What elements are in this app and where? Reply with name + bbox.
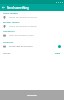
button[interactable]: Where do you want to deliver (0, 23, 64, 29)
button[interactable]: Do we need an insurance (0, 43, 64, 49)
staticText: Do we need an insurance (9, 45, 33, 48)
staticText: What do you want to send (9, 34, 34, 37)
staticText: PICKUP ADDRESS (3, 12, 18, 14)
staticText: DELIVERY ADDRESS (3, 21, 20, 23)
staticText: INSURANCE (3, 41, 14, 43)
button[interactable]: Where do you want to pick up (0, 14, 64, 20)
button[interactable]: What do you want to send (0, 32, 64, 38)
staticText: ITEM DETAILS (3, 30, 15, 32)
staticText: FREE (55, 52, 60, 55)
staticText: Send something (7, 6, 29, 10)
button[interactable]: PROCEED (0, 90, 64, 100)
staticText: Delivery (3, 52, 11, 55)
staticText: PROCEED (27, 94, 37, 97)
staticText: Where do you want to deliver (9, 25, 37, 28)
button[interactable]: Back (1, 5, 6, 10)
staticText: Where do you want to pick up (9, 16, 37, 19)
